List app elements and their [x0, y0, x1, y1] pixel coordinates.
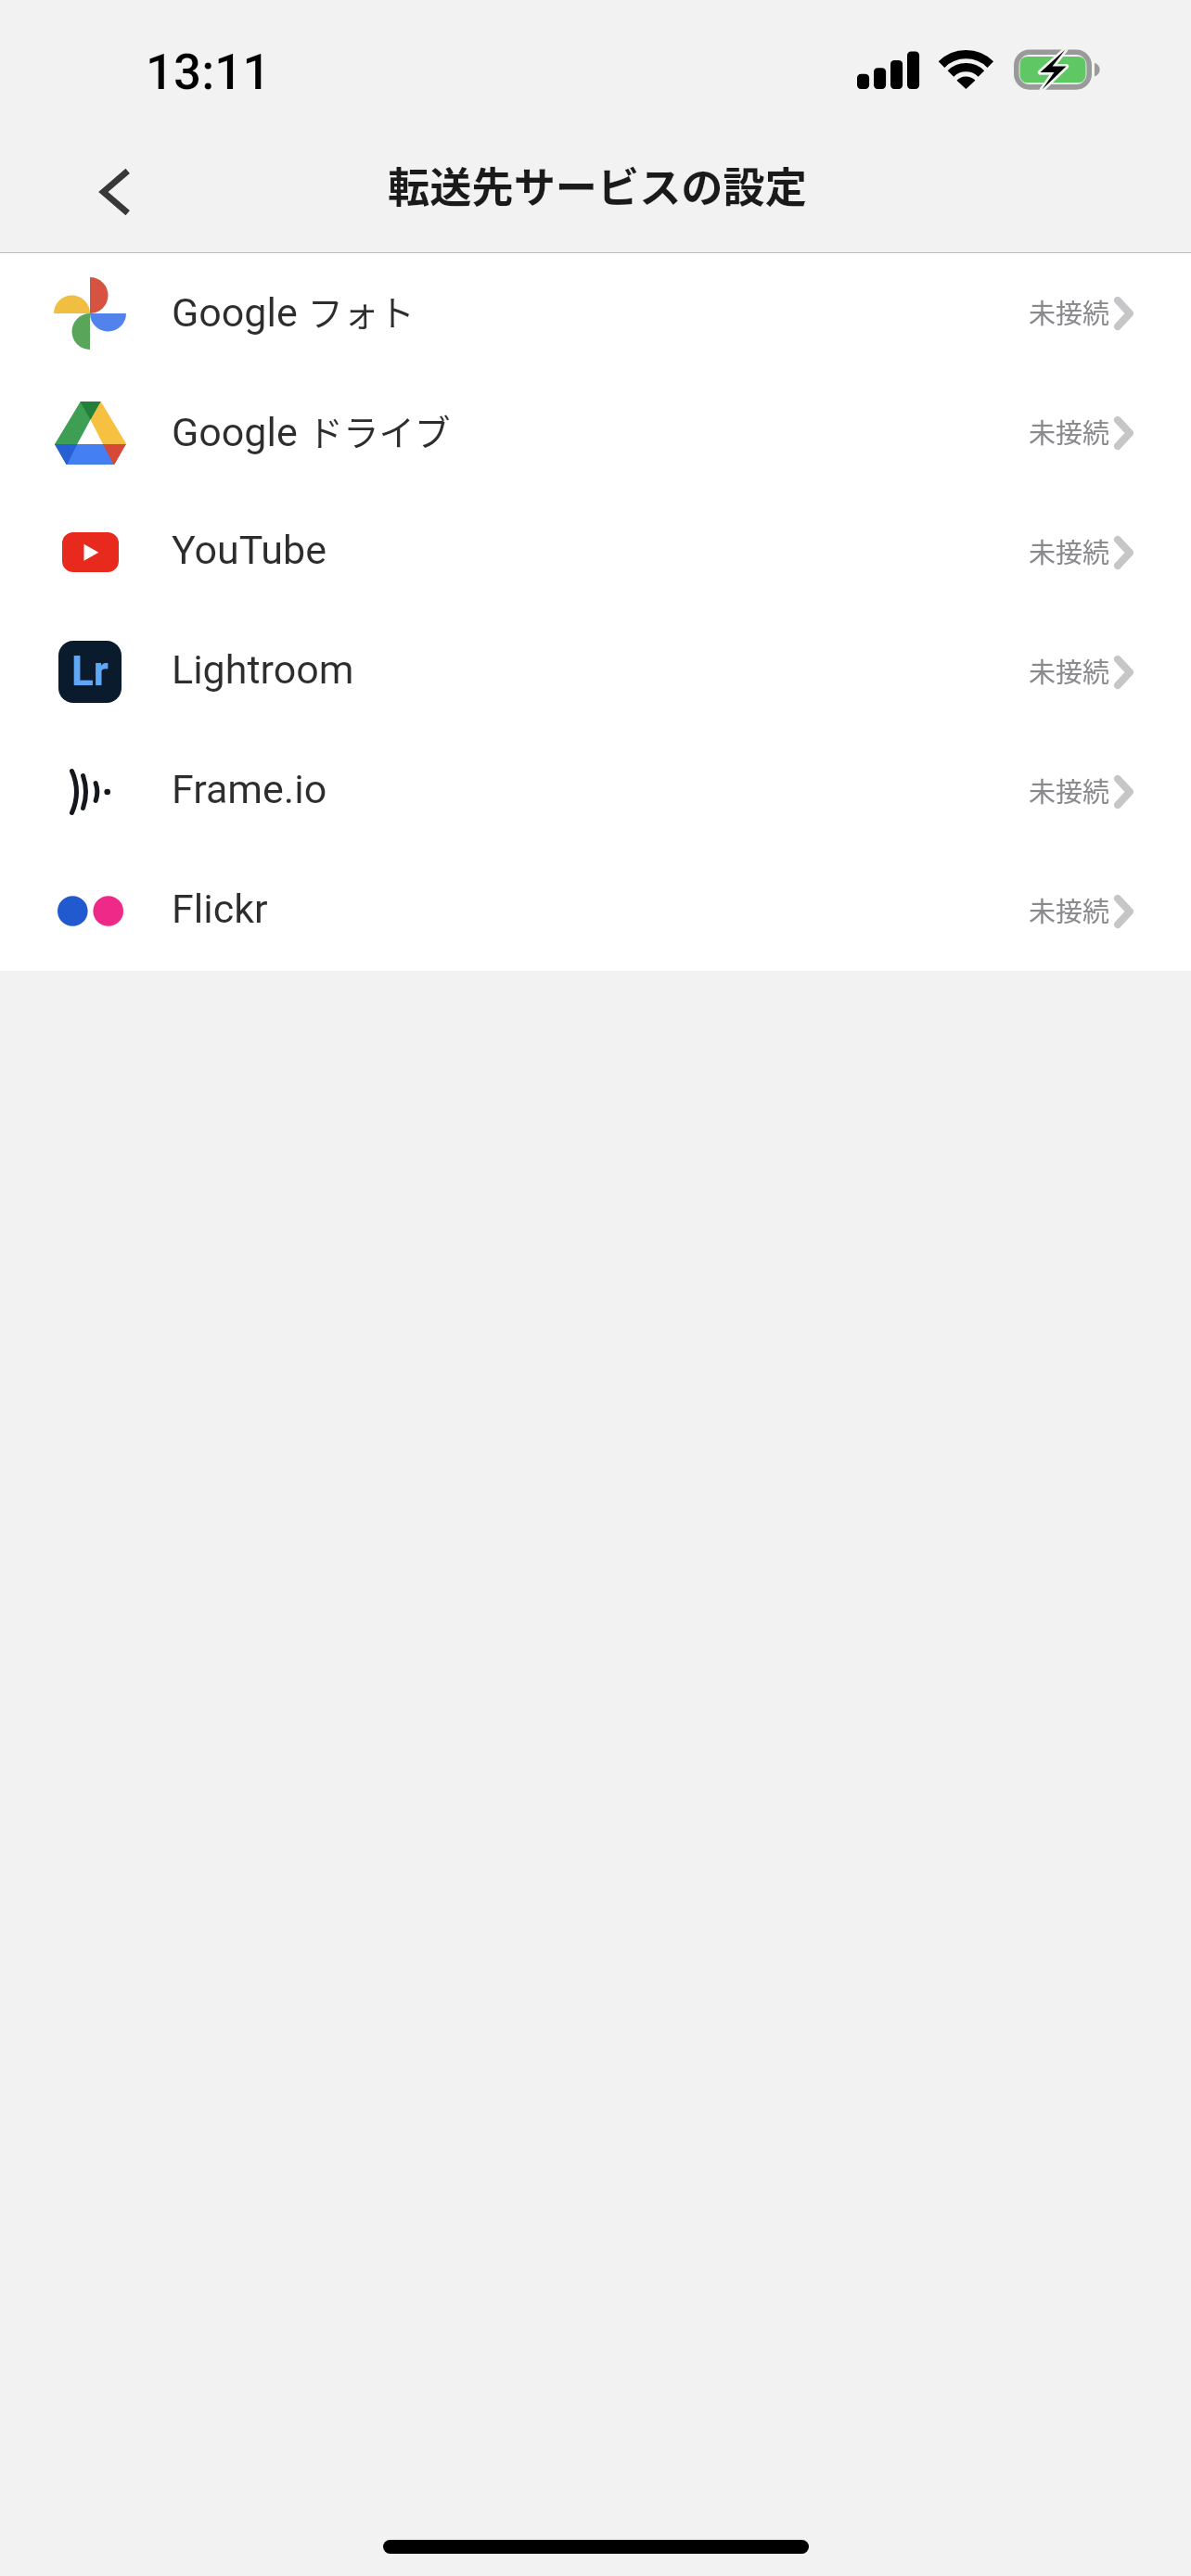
staticText: 未接続: [1029, 890, 1110, 929]
button[interactable]: Flickr: [0, 851, 1191, 971]
button[interactable]: Frame.io: [0, 732, 1191, 851]
button[interactable]: Back: [58, 139, 173, 252]
staticText: Flickr: [172, 886, 268, 932]
staticText: 未接続: [1029, 292, 1110, 331]
button[interactable]: Google フォト: [0, 253, 1191, 373]
staticText: Frame.io: [172, 766, 327, 812]
staticText: Google ドライブ: [172, 404, 451, 456]
staticText: 未接続: [1029, 771, 1110, 810]
staticText: 13:11: [146, 44, 271, 101]
staticText: 未接続: [1029, 412, 1110, 451]
staticText: Lr: [71, 647, 109, 695]
staticText: 未接続: [1029, 651, 1110, 690]
button[interactable]: YouTube: [0, 492, 1191, 612]
staticText: Google フォト: [172, 285, 415, 337]
staticText: 転送先サービスの設定: [388, 155, 807, 215]
button[interactable]: Lr: [0, 612, 1191, 732]
staticText: Lightroom: [172, 646, 354, 693]
button[interactable]: Google ドライブ: [0, 373, 1191, 492]
staticText: 未接続: [1029, 531, 1110, 570]
staticText: YouTube: [172, 527, 327, 573]
